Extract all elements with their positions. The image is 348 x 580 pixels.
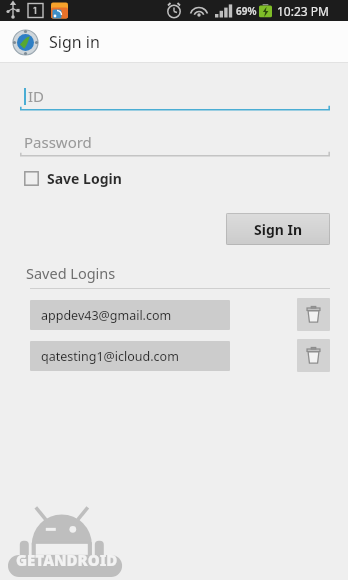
staticText: Sign In — [254, 220, 303, 239]
button[interactable]: qatesting1@icloud.com — [30, 341, 230, 371]
staticText: Password — [24, 132, 92, 152]
button[interactable]: Delete saved login — [297, 339, 330, 372]
staticText: Saved Logins — [26, 263, 116, 283]
staticText: 10:23 PM — [277, 3, 329, 19]
staticText: GETANDROID — [16, 550, 118, 570]
staticText: 69% — [236, 4, 257, 18]
staticText: Save Login — [47, 169, 122, 188]
staticText: ID — [28, 86, 45, 106]
button[interactable]: Save Login — [22, 166, 124, 191]
button[interactable]: ID — [20, 81, 330, 111]
button[interactable]: Password — [20, 127, 330, 157]
button[interactable]: Sign In — [226, 213, 330, 245]
staticText: appdev43@gmail.com — [41, 307, 172, 324]
button[interactable]: Delete saved login — [297, 298, 330, 331]
staticText: qatesting1@icloud.com — [41, 348, 179, 365]
button[interactable]: appdev43@gmail.com — [30, 300, 230, 330]
staticText: Sign in — [49, 31, 100, 53]
